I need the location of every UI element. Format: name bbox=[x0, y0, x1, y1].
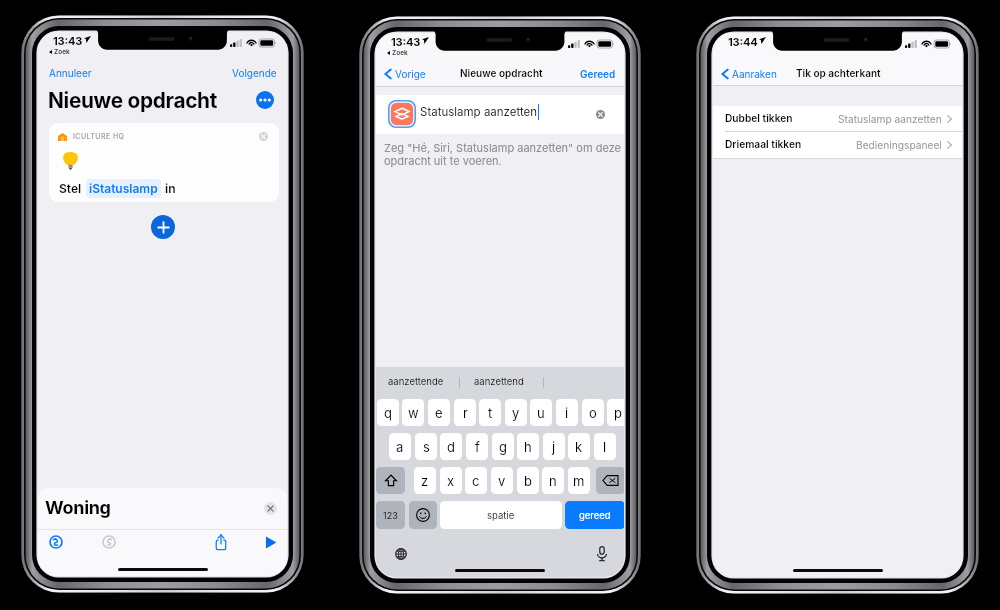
button[interactable]: Emoji bbox=[409, 501, 437, 529]
staticText: a bbox=[396, 439, 404, 455]
button[interactable]: aanzettend bbox=[474, 376, 524, 387]
staticText: in bbox=[165, 181, 176, 196]
button[interactable]: Taal wijzigen bbox=[392, 548, 410, 560]
button[interactable]: p bbox=[607, 399, 624, 426]
button[interactable]: Volgende bbox=[231, 66, 278, 80]
staticText: t bbox=[488, 405, 493, 421]
staticText: Nieuwe opdracht bbox=[460, 67, 543, 79]
button[interactable]: Annuleer bbox=[48, 66, 93, 80]
button[interactable]: ICULTURE HQ bbox=[49, 123, 279, 202]
button[interactable]: b bbox=[517, 467, 539, 494]
button[interactable]: Opnieuw bbox=[102, 535, 116, 549]
button[interactable]: v bbox=[491, 467, 513, 494]
button[interactable]: z bbox=[414, 467, 436, 494]
button[interactable]: Speel af bbox=[265, 536, 277, 549]
staticText: k bbox=[575, 439, 583, 455]
button[interactable]: Wis tekst bbox=[596, 110, 605, 119]
staticText: i bbox=[565, 405, 569, 421]
button[interactable]: f bbox=[466, 433, 488, 460]
button[interactable]: d bbox=[440, 433, 462, 460]
staticText: h bbox=[524, 439, 532, 455]
staticText: b bbox=[524, 473, 532, 489]
staticText: 13:44 bbox=[728, 35, 758, 48]
button[interactable]: x bbox=[440, 467, 462, 494]
staticText: ICULTURE HQ bbox=[73, 132, 125, 140]
button[interactable]: Verwijder bbox=[259, 132, 268, 141]
staticText: z bbox=[421, 473, 429, 489]
button[interactable]: l bbox=[594, 433, 616, 460]
button[interactable]: Gereed bbox=[579, 67, 617, 81]
staticText: y bbox=[512, 405, 520, 421]
button[interactable]: w bbox=[402, 399, 424, 426]
button[interactable]: c bbox=[465, 467, 487, 494]
staticText: e bbox=[435, 405, 443, 421]
button[interactable]: gereed bbox=[565, 501, 624, 529]
staticText: Zoek bbox=[392, 49, 408, 57]
button[interactable]: Sluiten bbox=[264, 502, 277, 515]
staticText: Zeg "Hé, Siri, Statuslamp aanzetten" om … bbox=[384, 141, 621, 168]
button[interactable]: k bbox=[568, 433, 590, 460]
staticText: Statuslamp aanzetten bbox=[838, 113, 942, 125]
staticText: n bbox=[549, 473, 557, 489]
button[interactable]: e bbox=[428, 399, 450, 426]
staticText: 123 bbox=[383, 510, 398, 521]
staticText: gereed bbox=[579, 510, 611, 521]
staticText: spatie bbox=[487, 510, 515, 521]
staticText: Statuslamp aanzetten bbox=[420, 105, 538, 119]
staticText: j bbox=[552, 439, 556, 455]
staticText: m bbox=[573, 473, 585, 489]
staticText: Driemaal tikken bbox=[725, 138, 802, 150]
staticText: u bbox=[537, 405, 545, 421]
button[interactable]: u bbox=[530, 399, 552, 426]
button[interactable]: Ongedaan maken bbox=[49, 535, 63, 549]
staticText: l bbox=[603, 439, 607, 455]
staticText: p bbox=[614, 405, 622, 421]
button[interactable]: Deel bbox=[214, 534, 228, 550]
staticText: Nieuwe opdracht bbox=[48, 88, 218, 113]
button[interactable]: Aanraken bbox=[720, 67, 778, 81]
staticText: q bbox=[384, 405, 392, 421]
staticText: Volgende bbox=[232, 67, 277, 79]
staticText: g bbox=[499, 439, 507, 455]
staticText: c bbox=[472, 473, 480, 489]
button[interactable]: Hoofdletter bbox=[376, 467, 405, 494]
button[interactable]: Wissen bbox=[596, 467, 624, 494]
button[interactable]: y bbox=[505, 399, 527, 426]
button[interactable]: r bbox=[454, 399, 476, 426]
button[interactable]: 123 bbox=[376, 501, 405, 529]
button[interactable]: iStatuslamp bbox=[89, 181, 158, 196]
staticText: Annuleer bbox=[49, 67, 92, 79]
button[interactable]: o bbox=[582, 399, 604, 426]
button[interactable]: j bbox=[543, 433, 565, 460]
button[interactable]: t bbox=[479, 399, 501, 426]
staticText: Aanraken bbox=[732, 68, 777, 80]
button[interactable]: Driemaal tikken bbox=[713, 131, 962, 158]
staticText: f bbox=[475, 439, 480, 455]
button[interactable]: a bbox=[389, 433, 411, 460]
staticText: Dubbel tikken bbox=[725, 112, 793, 124]
staticText: r bbox=[463, 405, 468, 421]
button[interactable]: aanzettende bbox=[388, 376, 444, 387]
staticText: Vorige bbox=[395, 68, 426, 80]
button[interactable]: Dicteren bbox=[597, 546, 607, 561]
button[interactable]: i bbox=[556, 399, 578, 426]
button[interactable]: n bbox=[542, 467, 564, 494]
staticText: o bbox=[589, 405, 597, 421]
button[interactable]: spatie bbox=[440, 501, 562, 529]
button[interactable]: Vorige bbox=[383, 67, 427, 81]
staticText: d bbox=[447, 439, 455, 455]
staticText: x bbox=[447, 473, 455, 489]
button[interactable]: s bbox=[415, 433, 437, 460]
staticText: w bbox=[408, 405, 419, 421]
button[interactable]: g bbox=[492, 433, 514, 460]
button[interactable]: Voeg actie toe bbox=[151, 215, 175, 239]
staticText: 13:43 bbox=[53, 34, 83, 47]
button[interactable]: Meer opties bbox=[256, 91, 274, 109]
staticText: 13:43 bbox=[391, 35, 421, 48]
staticText: Woning bbox=[45, 497, 111, 519]
button[interactable]: Dubbel tikken bbox=[713, 106, 962, 131]
button[interactable]: h bbox=[517, 433, 539, 460]
button[interactable]: q bbox=[377, 399, 399, 426]
button[interactable]: m bbox=[568, 467, 590, 494]
staticText: v bbox=[498, 473, 506, 489]
